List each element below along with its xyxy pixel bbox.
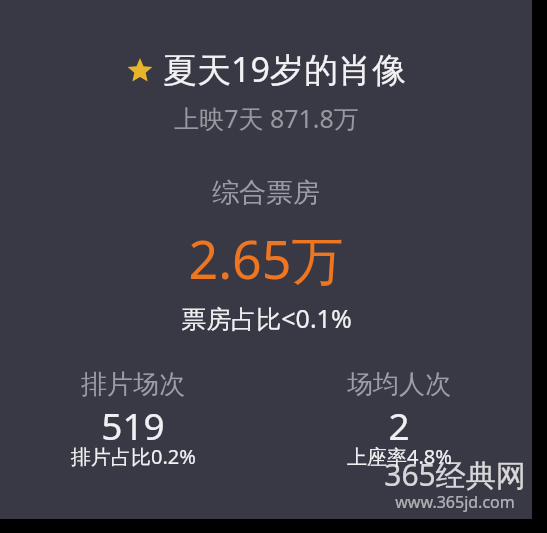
staticText: 场均人次 bbox=[347, 368, 451, 400]
staticText: 365经典网 bbox=[384, 454, 526, 495]
staticText: 排片占比0.2% bbox=[71, 443, 196, 470]
button[interactable]: 排片场次 bbox=[0, 368, 266, 470]
staticText: 排片场次 bbox=[81, 368, 185, 400]
button[interactable]: Favorite bbox=[127, 46, 406, 92]
staticText: 综合票房 bbox=[212, 176, 320, 210]
staticText: 上映7天 871.8万 bbox=[174, 101, 359, 135]
other: Favorite bbox=[127, 58, 153, 84]
button[interactable]: 场均人次 bbox=[266, 368, 532, 470]
staticText: 上座率4.8% bbox=[347, 443, 452, 470]
staticText: 2.65万 bbox=[188, 223, 344, 294]
staticText: 夏天19岁的肖像 bbox=[163, 46, 406, 92]
staticText: 519 bbox=[101, 400, 165, 442]
staticText: www.365jd.com bbox=[395, 491, 515, 513]
staticText: 2 bbox=[388, 400, 410, 442]
staticText: 票房占比<0.1% bbox=[181, 301, 352, 335]
